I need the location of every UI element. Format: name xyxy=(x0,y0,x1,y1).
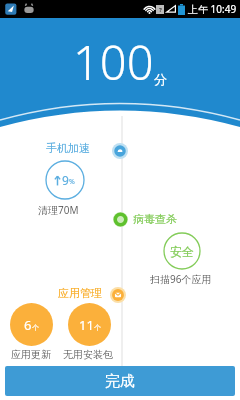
staticText: 9 xyxy=(62,172,69,188)
button[interactable]: Phone boost xyxy=(112,143,128,159)
button[interactable]: 6 xyxy=(10,303,53,346)
button[interactable]: 9 xyxy=(45,160,85,200)
staticText: % xyxy=(69,177,75,187)
staticText: 手机加速 xyxy=(46,141,90,155)
staticText: 无用安装包 xyxy=(63,348,113,361)
staticText: ? xyxy=(159,6,162,14)
staticText: 完成 xyxy=(105,372,135,391)
staticText: 病毒查杀 xyxy=(133,212,177,226)
staticText: 应用更新 xyxy=(11,348,51,361)
staticText: 个 xyxy=(94,323,101,332)
staticText: 上午 10:49 xyxy=(188,2,237,16)
button[interactable]: 手机加速 xyxy=(46,141,90,155)
button[interactable]: 11 xyxy=(68,303,111,346)
staticText: 11 xyxy=(79,316,94,334)
staticText: 应用管理 xyxy=(58,286,102,300)
button[interactable]: Virus scan xyxy=(113,212,128,227)
staticText: 清理70M xyxy=(38,203,79,217)
staticText: 100 xyxy=(73,30,154,94)
staticText: 个 xyxy=(32,323,39,332)
staticText: 扫描96个应用 xyxy=(150,272,212,286)
staticText: 6 xyxy=(24,316,32,334)
button[interactable]: 完成 xyxy=(5,366,235,396)
button[interactable]: App manager xyxy=(110,287,126,303)
button[interactable]: 应用管理 xyxy=(58,286,102,300)
staticText: 分 xyxy=(154,71,167,87)
staticText: 安全 xyxy=(170,244,194,259)
button[interactable]: 安全 xyxy=(163,232,201,270)
button[interactable]: 病毒查杀 xyxy=(133,212,177,226)
